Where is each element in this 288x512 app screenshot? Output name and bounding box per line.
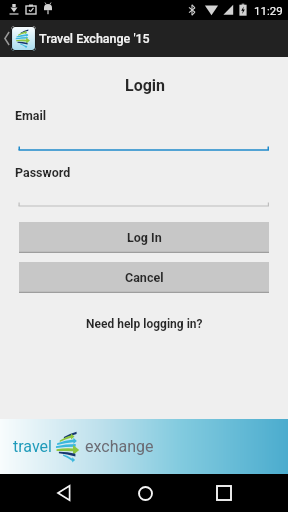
staticText: Email xyxy=(15,108,47,123)
button[interactable]: Recent apps xyxy=(200,474,248,512)
staticText: Log In xyxy=(127,230,162,245)
staticText: Travel Exchange '15 xyxy=(39,31,150,46)
button[interactable]: Back xyxy=(40,474,88,512)
button[interactable]: Need help logging in? xyxy=(80,315,209,333)
staticText: Password xyxy=(15,165,71,180)
staticText: Need help logging in? xyxy=(86,317,203,331)
button[interactable]: Log In xyxy=(19,222,269,253)
staticText: Cancel xyxy=(125,270,164,285)
staticText: exchange xyxy=(85,437,154,456)
staticText: 11:29 xyxy=(254,4,283,17)
button[interactable]: Navigate up xyxy=(0,20,288,57)
staticText: travel xyxy=(13,437,52,456)
staticText: Login xyxy=(125,76,166,95)
button[interactable]: Cancel xyxy=(19,262,269,293)
button[interactable]: Home xyxy=(121,474,169,512)
